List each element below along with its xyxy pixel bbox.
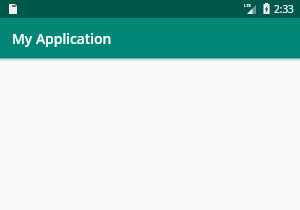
staticText: 2:33 [274,2,294,16]
button[interactable]: My Application [0,18,300,58]
other: Mobile signal strength [247,5,256,14]
staticText: LTE [244,3,251,8]
other: Save notification [9,4,17,14]
other: Battery charging [263,3,270,14]
staticText: My Application [12,29,112,48]
